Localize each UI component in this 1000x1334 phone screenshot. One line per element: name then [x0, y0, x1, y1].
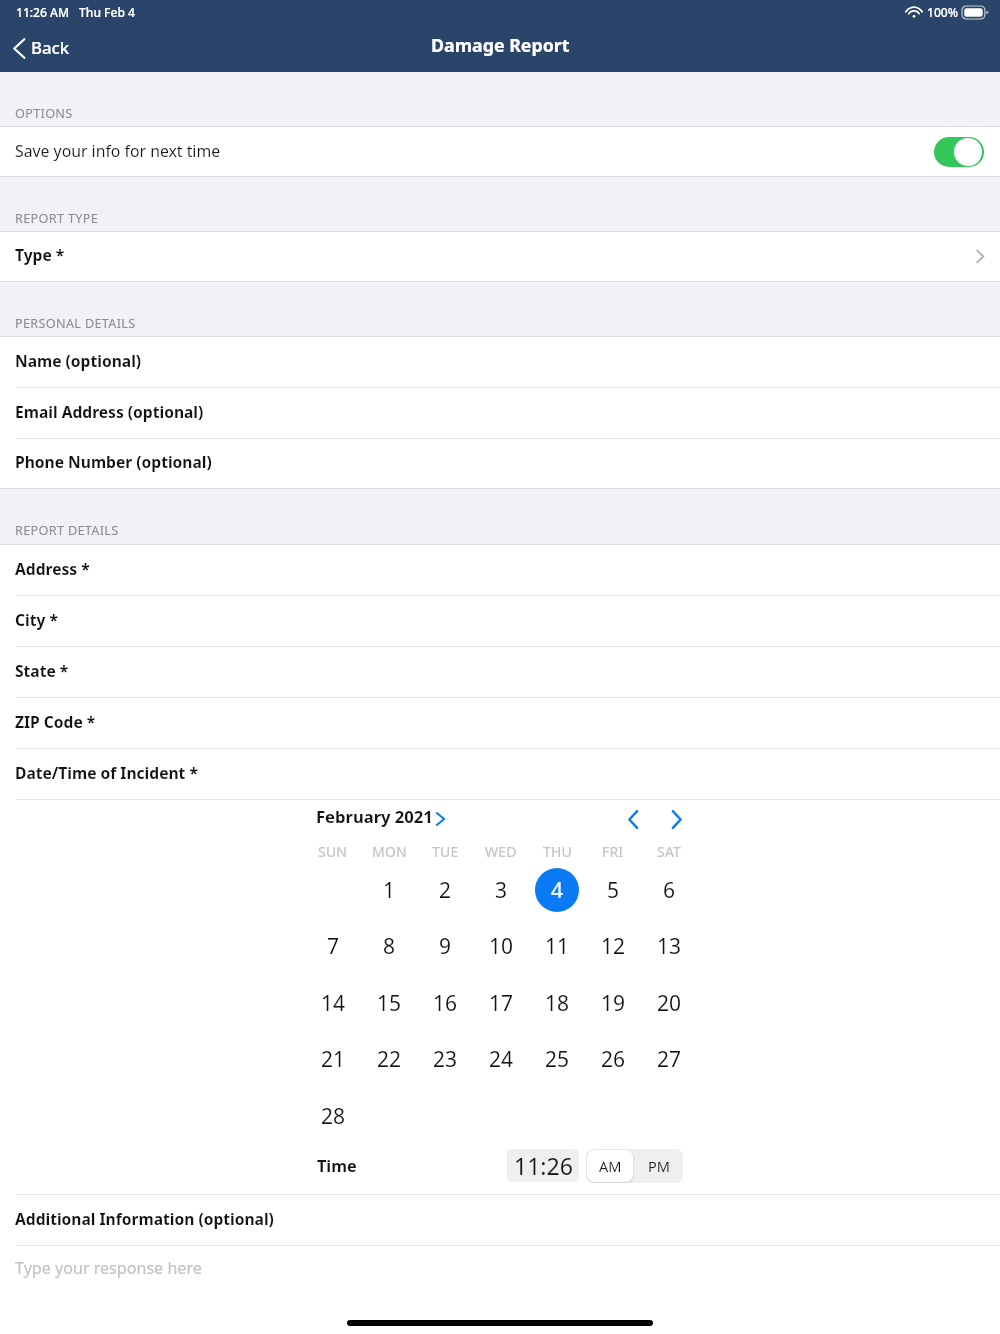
staticText: 100%: [927, 4, 959, 20]
button[interactable]: 15: [367, 981, 411, 1025]
button[interactable]: 7: [311, 924, 355, 968]
button[interactable]: Previous month: [612, 798, 654, 840]
staticText: 17: [489, 989, 514, 1018]
button[interactable]: 16: [423, 981, 467, 1025]
button[interactable]: Address *: [0, 545, 1000, 596]
staticText: OPTIONS: [15, 104, 73, 121]
staticText: 2: [439, 876, 452, 905]
button[interactable]: Additional Information (optional): [0, 1195, 1000, 1246]
staticText: Address *: [15, 558, 90, 579]
button[interactable]: 1: [367, 868, 411, 912]
staticText: 26: [601, 1045, 626, 1074]
button[interactable]: 20: [647, 981, 691, 1025]
button[interactable]: 5: [591, 868, 635, 912]
staticText: Time: [317, 1155, 357, 1177]
staticText: Additional Information (optional): [15, 1208, 274, 1229]
staticText: 11:26: [514, 1150, 573, 1181]
staticText: 27: [657, 1045, 682, 1074]
button[interactable]: 26: [591, 1037, 635, 1081]
button[interactable]: 6: [647, 868, 691, 912]
staticText: ZIP Code *: [15, 711, 96, 732]
button[interactable]: ZIP Code *: [0, 698, 1000, 749]
staticText: 13: [657, 932, 682, 961]
staticText: Save your info for next time: [15, 140, 221, 162]
staticText: Phone Number (optional): [15, 451, 212, 472]
staticText: AM: [599, 1156, 622, 1176]
staticText: 5: [607, 876, 620, 905]
button[interactable]: 10: [479, 924, 523, 968]
button[interactable]: 4: [535, 868, 579, 912]
button[interactable]: 27: [647, 1037, 691, 1081]
button[interactable]: 23: [423, 1037, 467, 1081]
button[interactable]: 24: [479, 1037, 523, 1081]
button[interactable]: 28: [311, 1094, 355, 1138]
staticText: 19: [601, 989, 626, 1018]
staticText: PM: [648, 1156, 670, 1176]
button[interactable]: 21: [311, 1037, 355, 1081]
button[interactable]: 11:26: [507, 1149, 579, 1182]
button[interactable]: 8: [367, 924, 411, 968]
staticText: 4: [551, 876, 564, 905]
staticText: Damage Report: [431, 33, 570, 57]
button[interactable]: State *: [0, 647, 1000, 698]
staticText: 21: [321, 1045, 346, 1074]
staticText: SAT: [657, 842, 682, 861]
button[interactable]: AM: [587, 1150, 633, 1182]
staticText: 28: [321, 1102, 346, 1131]
button[interactable]: Date/Time of Incident *: [0, 749, 1000, 800]
staticText: 9: [439, 932, 452, 961]
staticText: Type your response here: [15, 1257, 202, 1279]
staticText: Thu Feb 4: [79, 4, 135, 20]
button[interactable]: Save your info for next time toggle: [934, 137, 984, 167]
staticText: 18: [545, 989, 570, 1018]
button[interactable]: 19: [591, 981, 635, 1025]
button[interactable]: 9: [423, 924, 467, 968]
button[interactable]: Type your response here: [0, 1246, 1000, 1298]
staticText: 22: [377, 1045, 402, 1074]
button[interactable]: Email Address (optional): [0, 388, 1000, 439]
staticText: REPORT DETAILS: [15, 521, 119, 538]
button[interactable]: Next month: [655, 798, 697, 840]
staticText: 1: [383, 876, 396, 905]
staticText: PERSONAL DETAILS: [15, 314, 136, 331]
staticText: 25: [545, 1045, 570, 1074]
staticText: WED: [485, 842, 517, 861]
button[interactable]: Name (optional): [0, 337, 1000, 388]
staticText: Name (optional): [15, 350, 142, 371]
staticText: Email Address (optional): [15, 401, 204, 422]
staticText: Date/Time of Incident *: [15, 762, 198, 783]
button[interactable]: PM: [634, 1149, 683, 1183]
button[interactable]: Phone Number (optional): [0, 439, 1000, 488]
staticText: 23: [433, 1045, 458, 1074]
button[interactable]: 11: [535, 924, 579, 968]
staticText: 24: [489, 1045, 514, 1074]
staticText: 15: [377, 989, 402, 1018]
staticText: 12: [601, 932, 626, 961]
staticText: 14: [321, 989, 346, 1018]
staticText: 6: [663, 876, 676, 905]
staticText: State *: [15, 660, 69, 681]
staticText: THU: [543, 842, 572, 861]
button[interactable]: 3: [479, 868, 523, 912]
button[interactable]: Save your info for next time: [0, 127, 1000, 176]
staticText: 16: [433, 989, 458, 1018]
staticText: 3: [495, 876, 508, 905]
button[interactable]: 17: [479, 981, 523, 1025]
button[interactable]: 22: [367, 1037, 411, 1081]
button[interactable]: 12: [591, 924, 635, 968]
staticText: REPORT TYPE: [15, 209, 99, 226]
staticText: February 2021: [316, 805, 433, 828]
button[interactable]: 13: [647, 924, 691, 968]
button[interactable]: 18: [535, 981, 579, 1025]
button[interactable]: 25: [535, 1037, 579, 1081]
button[interactable]: Back: [0, 25, 83, 72]
button[interactable]: Type *: [0, 232, 1000, 281]
button[interactable]: February 2021: [316, 805, 445, 828]
staticText: 10: [489, 932, 514, 961]
staticText: 11: [545, 932, 570, 961]
button[interactable]: City *: [0, 596, 1000, 647]
button[interactable]: 14: [311, 981, 355, 1025]
button[interactable]: 2: [423, 868, 467, 912]
staticText: City *: [15, 609, 58, 630]
staticText: 7: [327, 932, 340, 961]
